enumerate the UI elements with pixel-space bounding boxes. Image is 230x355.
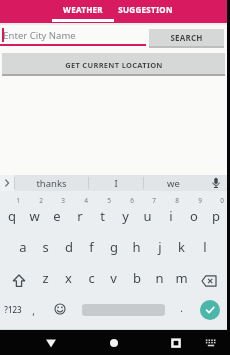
staticText: z xyxy=(42,269,49,287)
staticText: x xyxy=(65,269,72,287)
button[interactable]: . xyxy=(173,298,189,320)
button[interactable]: x xyxy=(57,267,80,289)
button[interactable]: Enter City Name xyxy=(0,23,146,46)
staticText: d xyxy=(65,238,73,256)
staticText: , xyxy=(32,304,35,318)
staticText: 9 xyxy=(198,196,202,204)
button[interactable]: f xyxy=(80,236,103,258)
staticText: SUGGESTION xyxy=(118,4,173,15)
staticText: SEARCH xyxy=(170,32,203,43)
staticText: 4 xyxy=(84,196,88,204)
button[interactable]: I xyxy=(89,175,143,191)
staticText: m xyxy=(175,269,188,287)
button[interactable]: b xyxy=(125,267,148,289)
button[interactable]: h xyxy=(125,236,148,258)
button[interactable]: thanks xyxy=(15,175,88,191)
button[interactable]: t xyxy=(91,205,114,227)
staticText: ?123 xyxy=(4,304,22,315)
staticText: e xyxy=(53,207,61,225)
staticText: I xyxy=(114,177,118,190)
staticText: 8 xyxy=(175,196,179,204)
button[interactable] xyxy=(49,298,71,320)
button[interactable]: r xyxy=(68,205,91,227)
staticText: GET CURRENT LOCATION xyxy=(65,60,163,70)
staticText: r xyxy=(77,207,83,225)
staticText: l xyxy=(203,238,207,256)
button[interactable]: p xyxy=(204,205,227,227)
staticText: c xyxy=(88,269,95,287)
button[interactable]: u xyxy=(136,205,159,227)
staticText: v xyxy=(110,269,117,287)
staticText: 7 xyxy=(152,196,156,204)
staticText: u xyxy=(143,207,152,225)
button[interactable] xyxy=(101,330,126,355)
staticText: s xyxy=(42,238,49,256)
staticText: 1 xyxy=(16,196,20,204)
staticText: i xyxy=(169,207,173,225)
staticText: . xyxy=(180,301,183,315)
staticText: n xyxy=(155,269,164,287)
staticText: WEATHER xyxy=(63,4,103,15)
button[interactable]: , xyxy=(25,298,41,320)
button[interactable]: e xyxy=(45,205,68,227)
button[interactable]: c xyxy=(80,267,103,289)
staticText: 6 xyxy=(130,196,134,204)
button[interactable]: s xyxy=(34,236,57,258)
staticText: 5 xyxy=(107,196,111,204)
button[interactable]: i xyxy=(159,205,182,227)
staticText: f xyxy=(89,238,94,256)
button[interactable]: GET CURRENT LOCATION xyxy=(2,53,225,74)
button[interactable]: ?123 xyxy=(1,298,24,320)
staticText: q xyxy=(8,207,16,225)
staticText: g xyxy=(110,238,118,256)
staticText: y xyxy=(122,207,129,225)
staticText: p xyxy=(212,207,220,225)
button[interactable]: o xyxy=(182,205,205,227)
button[interactable]: l xyxy=(193,236,216,258)
staticText: a xyxy=(19,238,27,256)
button[interactable]: y xyxy=(114,205,137,227)
staticText: 2 xyxy=(39,196,43,204)
button[interactable] xyxy=(163,330,188,355)
button[interactable] xyxy=(198,330,223,355)
button[interactable] xyxy=(204,175,227,191)
button[interactable]: w xyxy=(23,205,46,227)
staticText: o xyxy=(190,207,198,225)
button[interactable]: WEATHER xyxy=(52,0,114,23)
staticText: 3 xyxy=(61,196,65,204)
staticText: h xyxy=(132,238,141,256)
staticText: j xyxy=(158,238,162,256)
button[interactable]: j xyxy=(148,236,171,258)
button[interactable]: m xyxy=(170,267,193,289)
button[interactable]: a xyxy=(11,236,34,258)
staticText: we xyxy=(167,177,180,190)
button[interactable]: d xyxy=(57,236,80,258)
button[interactable]: q xyxy=(0,205,23,227)
button[interactable]: n xyxy=(148,267,171,289)
staticText: b xyxy=(133,269,141,287)
button[interactable] xyxy=(38,330,63,355)
staticText: t xyxy=(100,207,105,225)
button[interactable]: SEARCH xyxy=(149,29,224,46)
staticText: 0 xyxy=(220,196,224,204)
button[interactable]: we xyxy=(144,175,202,191)
button[interactable] xyxy=(5,270,33,292)
button[interactable] xyxy=(200,300,220,320)
staticText: thanks xyxy=(36,177,67,190)
staticText: k xyxy=(178,238,185,256)
button[interactable] xyxy=(195,270,223,292)
staticText: w xyxy=(29,207,40,225)
button[interactable]: g xyxy=(102,236,125,258)
staticText: Enter City Name xyxy=(3,29,76,42)
button[interactable]: SUGGESTION xyxy=(114,0,176,23)
button[interactable] xyxy=(0,175,14,191)
button[interactable]: k xyxy=(170,236,193,258)
button[interactable]: z xyxy=(34,267,57,289)
button[interactable]: v xyxy=(102,267,125,289)
